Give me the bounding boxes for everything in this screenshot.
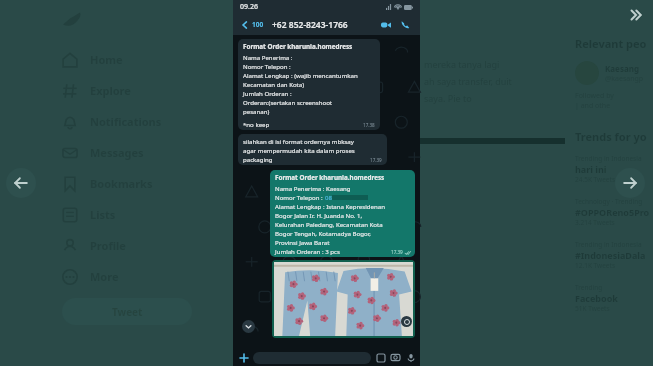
staticText: Messages <box>90 145 144 160</box>
staticText: Nama Penerima : Kaesang <box>275 184 351 192</box>
staticText: Bogor Jalan Ir. H. Juanda No. 1, <box>275 211 363 219</box>
staticText: Kecamatan dan Kota) <box>243 80 305 88</box>
staticText: Alamat Lengkap : Istana Kepresidenan <box>275 202 385 210</box>
button[interactable]: Download <box>401 316 412 327</box>
button[interactable]: Attach <box>237 351 250 364</box>
staticText: agar mempermudah kita dalam proses <box>243 146 355 154</box>
staticText: Relevant peo <box>575 36 647 51</box>
button[interactable]: Format Order kharunia.homedress <box>270 170 415 257</box>
staticText: 100 <box>252 20 264 29</box>
staticText: Tweet <box>112 305 143 319</box>
staticText: More <box>90 269 119 284</box>
staticText: 17.39 <box>391 249 403 255</box>
button[interactable]: Voice call <box>398 17 413 32</box>
staticText: Nomor Telepon : <box>243 62 291 70</box>
button[interactable]: Camera <box>390 352 401 363</box>
staticText: packaging <box>243 155 273 163</box>
button[interactable]: silahkan di isi format ordernya mbksay <box>238 134 387 165</box>
staticText: +62 852-8243-1766 <box>272 19 348 31</box>
staticText: pesanan) <box>243 107 270 115</box>
staticText: Facebook <box>575 292 618 304</box>
staticText: Nama Penerima : <box>243 53 293 61</box>
staticText: Orderan:(sertakan screenshoot <box>243 98 333 106</box>
staticText: hari ini <box>575 163 607 175</box>
staticText: Kaesang <box>605 63 639 74</box>
button[interactable]: Next <box>615 168 645 198</box>
staticText: Alamat Lengkap : (wajib mencantumkan <box>243 71 358 79</box>
staticText: Format Order kharunia.homedress <box>243 42 353 51</box>
button[interactable]: Photo attachment <box>274 262 413 336</box>
button[interactable]: Video call <box>378 17 393 32</box>
staticText: Nomor Telepon : <box>275 193 325 201</box>
staticText: Kelurahan Paledang, Kecamatan Kota <box>275 220 383 228</box>
button[interactable]: Format Order kharunia.homedress <box>238 39 380 130</box>
staticText: Home <box>90 52 123 67</box>
button[interactable]: Back <box>238 18 252 32</box>
button[interactable]: Scroll to bottom <box>242 320 255 333</box>
staticText: #OPPOReno5Pro <box>575 206 650 218</box>
button[interactable]: Close <box>623 2 649 28</box>
staticText: Explore <box>90 83 131 98</box>
staticText: 08 <box>325 193 332 201</box>
staticText: 17.39 <box>370 157 382 163</box>
button[interactable]: Previous <box>6 168 36 198</box>
staticText: silahkan di isi format ordernya mbksay <box>243 137 354 145</box>
staticText: Jumlah Orderan : 3 pcs <box>275 247 340 255</box>
staticText: Lists <box>90 207 116 222</box>
staticText: Provinsi Jawa Barat <box>275 238 330 246</box>
staticText: Profile <box>90 238 126 253</box>
button[interactable]: Voice message <box>405 352 416 363</box>
staticText: Bogor Tengah, Kotamadya Bogor, <box>275 229 371 237</box>
staticText: Bookmarks <box>90 176 153 191</box>
staticText: Trends for yo <box>575 129 647 144</box>
button[interactable] <box>253 352 371 364</box>
staticText: 17.38 <box>363 122 375 128</box>
staticText: Jumlah Orderan : <box>243 89 292 97</box>
staticText: *no keep <box>243 120 270 128</box>
staticText: Format Order kharunia.homedress <box>275 173 385 182</box>
button[interactable]: Stickers <box>375 352 386 363</box>
staticText: 09.26 <box>240 2 258 12</box>
staticText: #IndonesiaDalam <box>575 249 653 261</box>
staticText: Notifications <box>90 114 162 129</box>
